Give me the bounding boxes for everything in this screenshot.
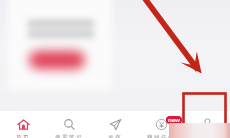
staticText: new [168, 116, 180, 124]
button[interactable]: Earn money [138, 111, 184, 138]
button[interactable]: Publish [92, 111, 138, 138]
staticText: 搜索笔记 [55, 134, 83, 138]
staticText: 首页 [16, 134, 30, 138]
button[interactable]: Home [0, 111, 46, 138]
button[interactable]: Profile [184, 111, 230, 138]
staticText: 发布 [108, 134, 122, 138]
staticText: 赚钱任务 [147, 134, 175, 138]
button[interactable]: Search [46, 111, 92, 138]
button[interactable]: New [166, 116, 182, 124]
button[interactable] [29, 51, 85, 69]
